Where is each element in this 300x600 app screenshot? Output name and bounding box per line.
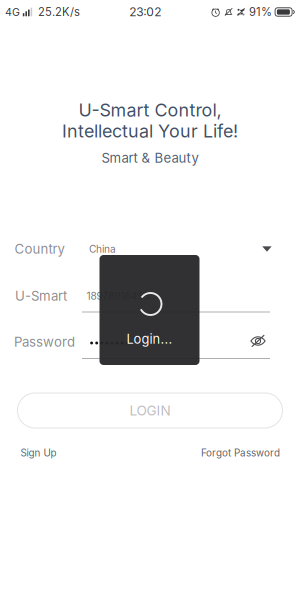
staticText: 23:02 — [129, 5, 161, 19]
staticText: Smart & Beauty — [101, 150, 198, 166]
staticText: LOGIN — [129, 402, 170, 419]
staticText: 4G — [5, 5, 20, 18]
button[interactable]: Sign Up — [21, 447, 57, 459]
staticText: 91% — [249, 5, 272, 19]
staticText: China — [89, 243, 116, 255]
staticText: U-Smart Control, — [78, 99, 221, 121]
button[interactable]: Country — [0, 236, 300, 262]
staticText: 25.2K/s — [38, 5, 80, 19]
button[interactable]: Show password — [250, 333, 266, 348]
staticText: U-Smart — [15, 288, 67, 304]
staticText: Login... — [126, 331, 172, 347]
staticText: Country — [14, 241, 64, 257]
staticText: Forgot Password — [201, 447, 280, 459]
staticText: Sign Up — [21, 447, 57, 459]
staticText: 18978916453 — [86, 290, 149, 302]
staticText: Intellectual Your Life! — [62, 120, 238, 142]
button[interactable]: Forgot Password — [201, 447, 280, 459]
staticText: Password — [14, 334, 75, 350]
button[interactable]: LOGIN — [17, 393, 282, 428]
